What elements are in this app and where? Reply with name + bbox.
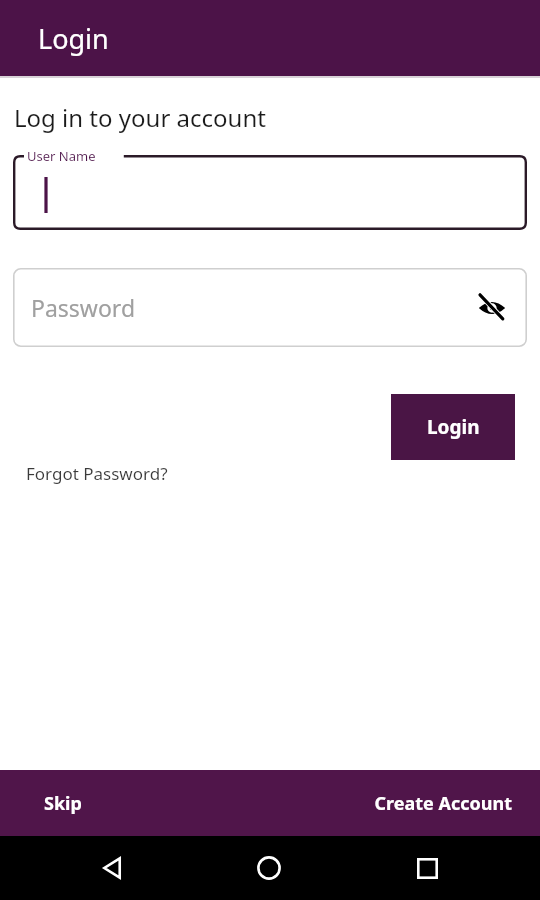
staticText: Forgot Password? bbox=[26, 462, 168, 485]
button[interactable]: Recent apps bbox=[403, 844, 451, 892]
staticText: Password bbox=[31, 292, 136, 323]
staticText: Login bbox=[38, 20, 109, 57]
button[interactable]: Login bbox=[391, 394, 515, 460]
button[interactable]: Forgot Password? bbox=[20, 458, 174, 489]
staticText: Skip bbox=[44, 791, 82, 816]
staticText: Log in to your account bbox=[14, 101, 266, 134]
button[interactable]: Show password bbox=[472, 288, 512, 328]
button[interactable]: Home bbox=[245, 844, 293, 892]
button[interactable]: Create Account bbox=[358, 781, 528, 826]
button[interactable] bbox=[13, 155, 527, 230]
staticText: Create Account bbox=[374, 791, 512, 816]
button[interactable]: Back bbox=[89, 844, 137, 892]
staticText: Login bbox=[427, 414, 480, 440]
staticText: User Name bbox=[27, 147, 96, 165]
button[interactable]: Password bbox=[13, 268, 527, 347]
button[interactable]: Skip bbox=[28, 781, 98, 826]
